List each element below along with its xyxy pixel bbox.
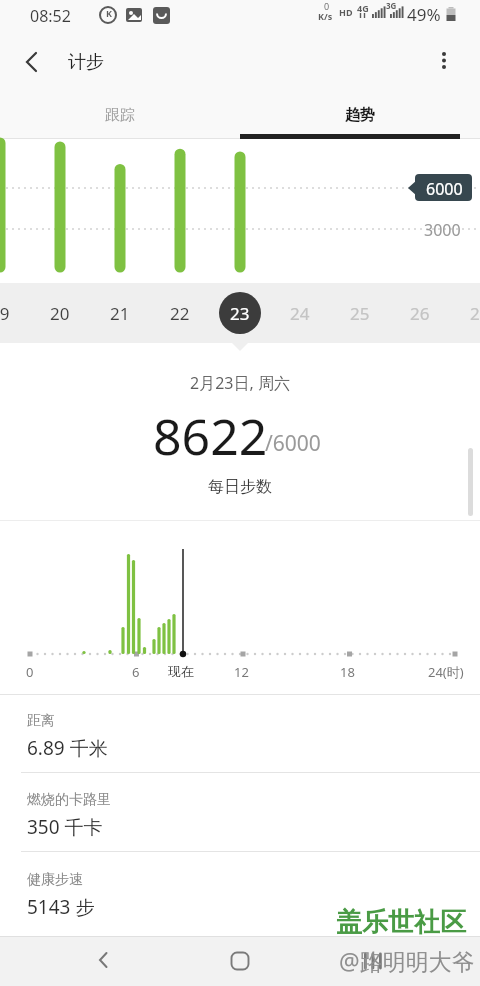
staticText: 25 xyxy=(350,302,370,325)
staticText: 6 xyxy=(132,663,140,681)
staticText: 20 xyxy=(50,302,70,325)
button[interactable]: 22 xyxy=(150,283,210,343)
staticText: HD xyxy=(339,6,353,18)
staticText: 18 xyxy=(340,663,355,681)
staticText: 27 xyxy=(470,302,480,325)
button[interactable] xyxy=(14,44,50,80)
button[interactable] xyxy=(426,42,462,78)
button[interactable]: 燃烧的卡路里 xyxy=(0,773,480,851)
staticText: @路明明大爷 xyxy=(339,945,475,976)
staticText: 4G xyxy=(357,2,369,14)
staticText: 每日步数 xyxy=(208,477,272,497)
staticText: 跟踪 xyxy=(105,106,135,125)
staticText: 3G xyxy=(386,0,397,11)
button[interactable]: 健康步速 xyxy=(0,852,480,936)
staticText: 23 xyxy=(230,302,250,325)
button[interactable]: 19 xyxy=(0,283,30,343)
staticText: 5143 步 xyxy=(27,894,95,920)
staticText: 12 xyxy=(234,663,249,681)
button[interactable]: 21 xyxy=(90,283,150,343)
button[interactable]: 距离 xyxy=(0,695,480,772)
staticText: 24 xyxy=(290,302,310,325)
staticText: 健康步速 xyxy=(27,871,83,889)
staticText: 0 xyxy=(324,0,330,12)
staticText: 19 xyxy=(0,302,10,325)
staticText: 计步 xyxy=(68,51,104,74)
button[interactable] xyxy=(354,942,392,980)
button[interactable]: 20 xyxy=(30,283,90,343)
staticText: 3000 xyxy=(424,219,461,241)
staticText: 26 xyxy=(410,302,430,325)
button[interactable]: 26 xyxy=(390,283,450,343)
button[interactable]: 23 xyxy=(210,283,270,343)
staticText: /6000 xyxy=(265,429,321,458)
staticText: 350 千卡 xyxy=(27,814,103,840)
staticText: 22 xyxy=(170,302,190,325)
button[interactable]: 25 xyxy=(330,283,390,343)
staticText: 08:52 xyxy=(30,5,71,27)
staticText: 盖乐世社区 xyxy=(336,906,466,939)
button[interactable]: 24 xyxy=(270,283,330,343)
button[interactable] xyxy=(85,941,123,979)
staticText: 6000 xyxy=(426,178,463,200)
staticText: 2月23日, 周六 xyxy=(190,372,290,394)
staticText: 现在 xyxy=(168,663,194,679)
staticText: 6.89 千米 xyxy=(27,735,108,761)
staticText: K/s xyxy=(318,10,333,22)
staticText: 8622 xyxy=(153,402,268,470)
button[interactable]: 27 xyxy=(450,283,480,343)
staticText: 21 xyxy=(110,302,130,325)
button[interactable] xyxy=(221,942,259,980)
staticText: 24(时) xyxy=(428,663,464,681)
button[interactable]: 趋势 xyxy=(240,92,480,138)
staticText: 0 xyxy=(26,663,34,681)
button[interactable]: 跟踪 xyxy=(0,92,240,138)
staticText: K xyxy=(106,7,112,19)
staticText: 燃烧的卡路里 xyxy=(27,791,111,809)
staticText: 距离 xyxy=(27,712,55,730)
staticText: 49% xyxy=(407,3,441,26)
staticText: 趋势 xyxy=(345,106,375,125)
